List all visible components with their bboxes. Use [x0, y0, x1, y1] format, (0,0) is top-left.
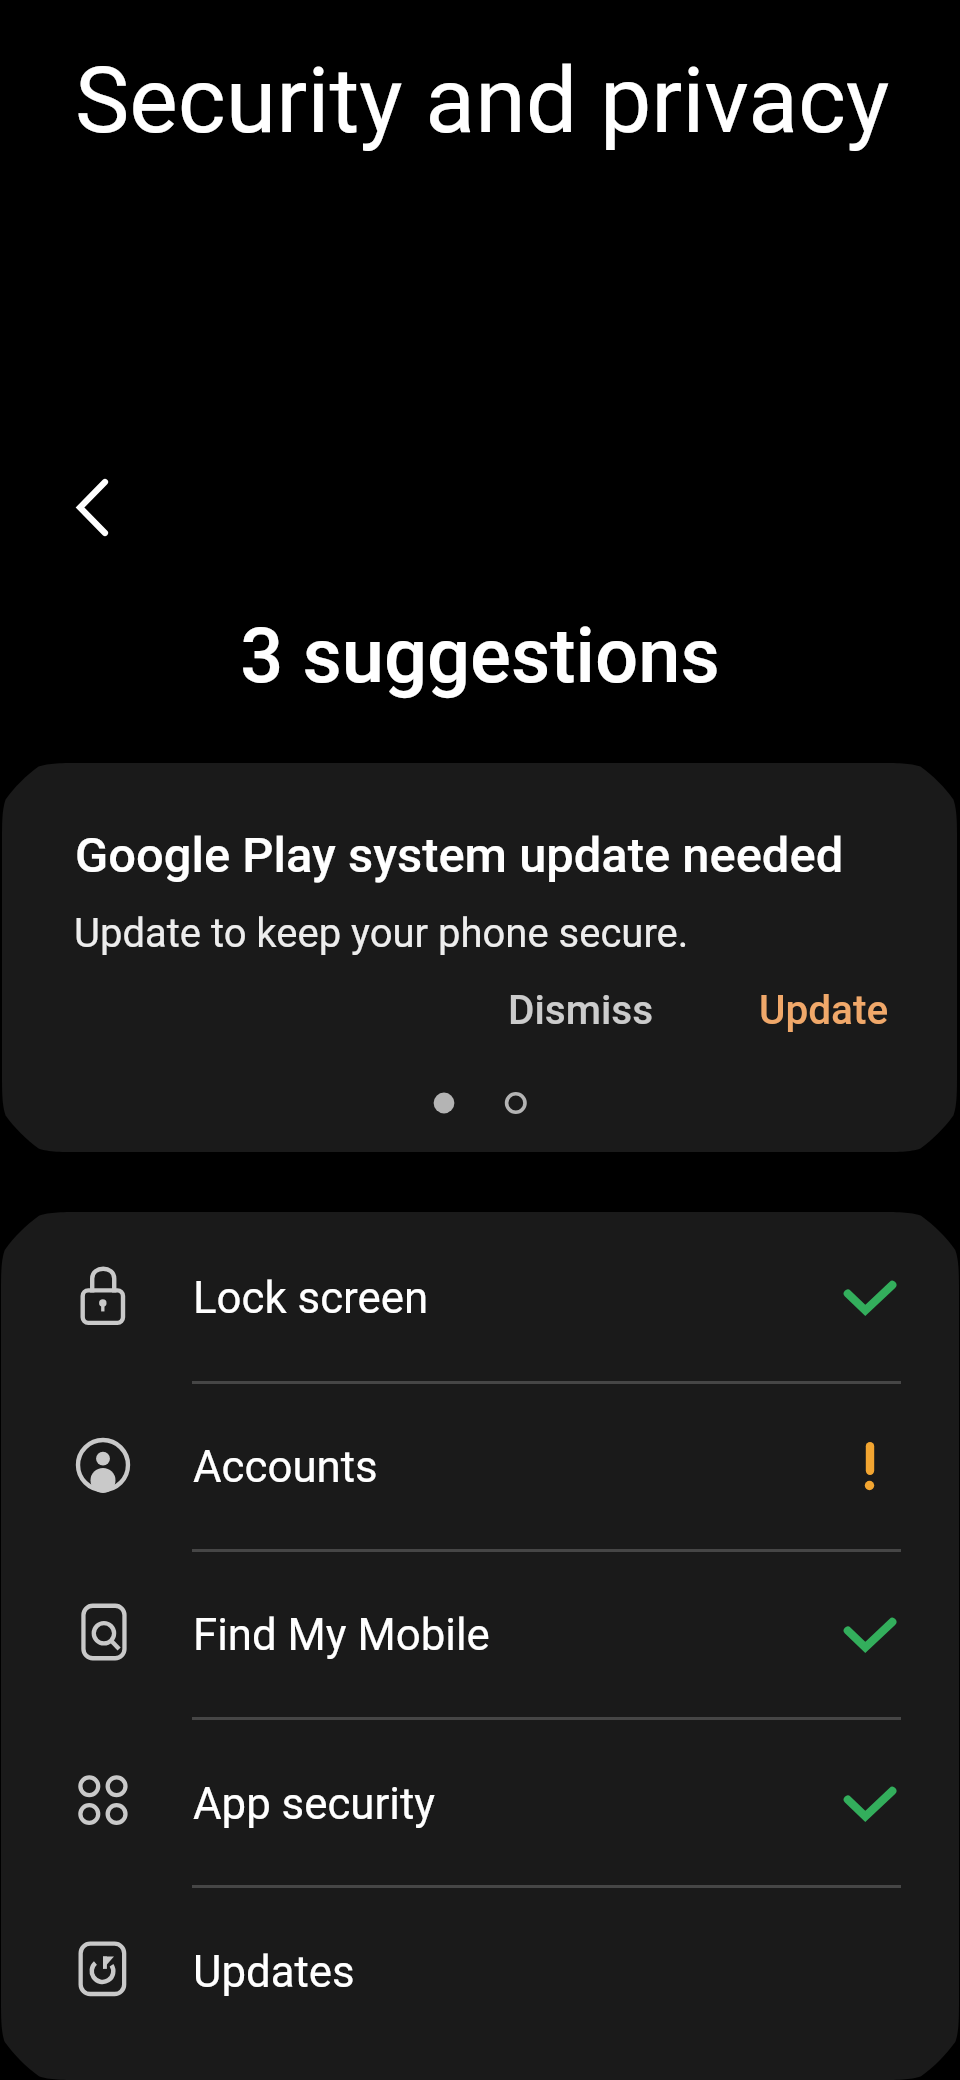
- staticText: Update: [759, 986, 889, 1033]
- staticText: Dismiss: [508, 986, 654, 1033]
- staticText: Lock screen: [193, 1272, 429, 1323]
- button[interactable]: Find My Mobile: [1, 1549, 957, 1717]
- button[interactable]: Update: [759, 986, 889, 1033]
- staticText: Update to keep your phone secure.: [74, 910, 689, 957]
- staticText: Updates: [193, 1946, 355, 1997]
- staticText: Accounts: [193, 1441, 378, 1492]
- staticText: App security: [193, 1778, 436, 1829]
- staticText: Security and privacy: [75, 47, 890, 154]
- button[interactable]: Dismiss: [508, 986, 654, 1033]
- staticText: Find My Mobile: [193, 1609, 490, 1660]
- staticText: 3 suggestions: [0, 611, 960, 700]
- button[interactable]: Updates: [1, 1885, 957, 2080]
- button[interactable]: Accounts: [1, 1381, 957, 1549]
- staticText: Google Play system update needed: [75, 827, 844, 884]
- button[interactable]: App security: [1, 1717, 957, 1885]
- button[interactable]: Lock screen: [1, 1212, 957, 1381]
- button[interactable]: Navigate up: [18, 446, 142, 570]
